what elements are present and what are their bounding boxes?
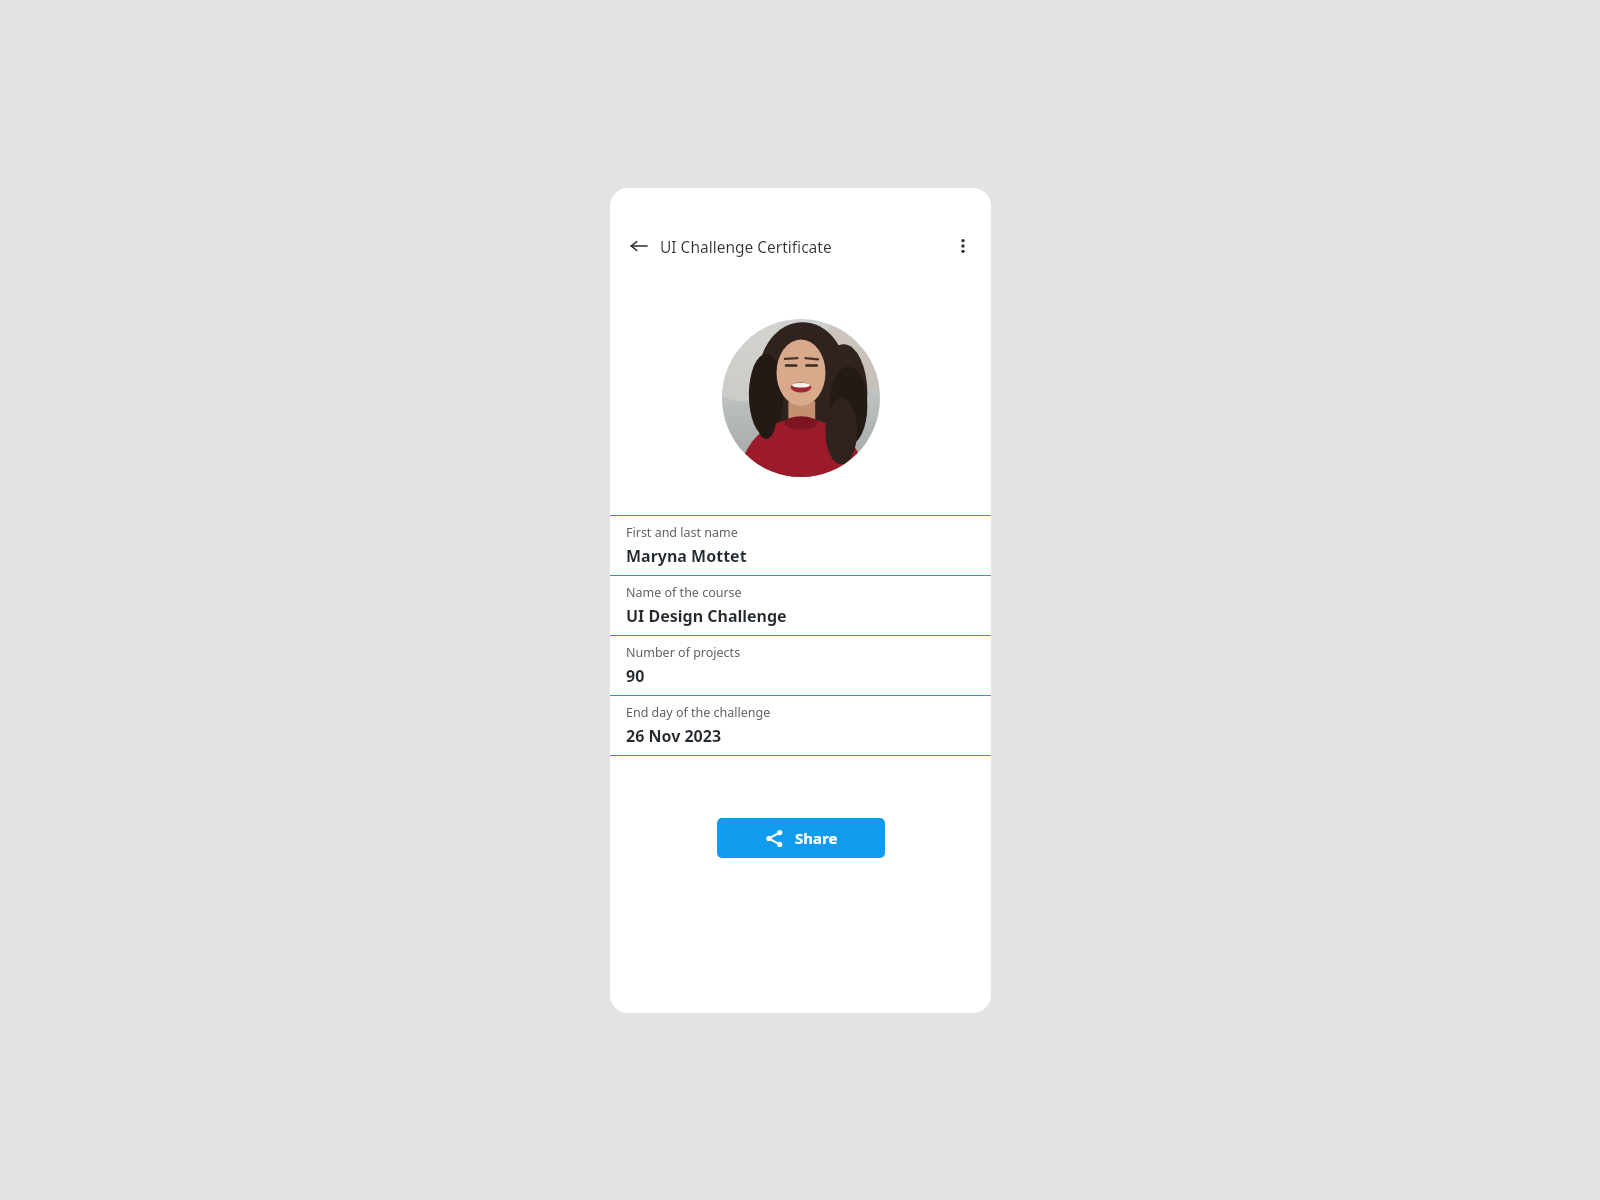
button[interactable]: First and last name — [610, 516, 991, 575]
staticText: Maryna Mottet — [626, 545, 747, 567]
button[interactable]: Number of projects — [610, 636, 991, 695]
button[interactable]: Share — [717, 818, 885, 858]
button[interactable]: More options — [947, 230, 979, 262]
staticText: UI Design Challenge — [626, 605, 787, 627]
staticText: Name of the course — [626, 584, 742, 601]
button[interactable]: End day of the challenge — [610, 696, 991, 755]
staticText: UI Challenge Certificate — [660, 236, 832, 257]
staticText: Number of projects — [626, 644, 741, 661]
staticText: End day of the challenge — [626, 704, 771, 721]
button[interactable]: Name of the course — [610, 576, 991, 635]
staticText: 90 — [626, 665, 645, 687]
staticText: First and last name — [626, 524, 738, 541]
button[interactable]: Back — [624, 231, 654, 261]
staticText: 26 Nov 2023 — [626, 725, 722, 747]
staticText: Share — [795, 828, 838, 848]
